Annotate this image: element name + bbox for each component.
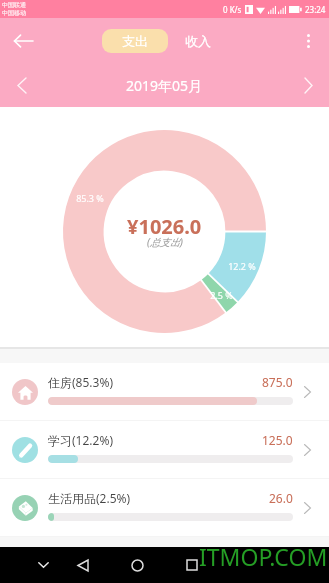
button[interactable]: 住房(85.3%)	[0, 363, 329, 420]
button[interactable]: 收入	[180, 29, 216, 53]
button[interactable]: 生活用品(2.5%)	[0, 479, 329, 536]
button[interactable]: Hide keyboard	[27, 549, 59, 581]
staticText: 生活用品(2.5%)	[48, 490, 131, 506]
staticText: 875.0	[262, 374, 293, 390]
staticText: 收入	[185, 33, 211, 49]
staticText: 0 K/s	[223, 4, 242, 15]
staticText: 住房(85.3%)	[48, 374, 113, 390]
staticText: ITMOP.COM	[199, 541, 328, 572]
staticText: 23:24	[305, 4, 326, 15]
staticText: 中国移动	[2, 9, 26, 17]
staticText: 2.5 %	[210, 289, 233, 301]
button[interactable]: Back	[67, 549, 99, 581]
button[interactable]: Next month	[293, 70, 323, 100]
button[interactable]: Previous month	[6, 70, 36, 100]
staticText: 85.3 %	[76, 192, 104, 204]
button[interactable]: 支出	[102, 29, 168, 53]
staticText: 学习(12.2%)	[48, 432, 113, 448]
button[interactable]: Back	[5, 22, 42, 59]
button[interactable]: More options	[292, 25, 324, 57]
staticText: 支出	[122, 33, 148, 49]
button[interactable]: Recent apps	[176, 549, 208, 581]
staticText: 12.2 %	[228, 260, 256, 272]
staticText: ¥1026.0	[127, 213, 202, 240]
button[interactable]: 学习(12.2%)	[0, 421, 329, 478]
button[interactable]: Home	[121, 549, 153, 581]
staticText: 中国联通	[2, 1, 26, 9]
staticText: (总支出)	[147, 235, 183, 249]
staticText: 2019年05月	[126, 76, 203, 95]
staticText: 125.0	[262, 432, 293, 448]
staticText: 26.0	[269, 490, 293, 506]
